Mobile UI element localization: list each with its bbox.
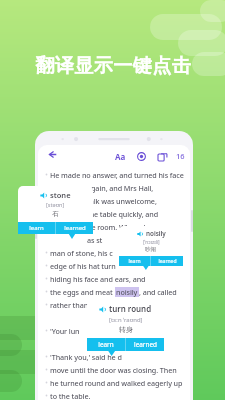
staticText: the eggs and meat: [50, 287, 115, 297]
button[interactable]: Font size: [113, 149, 127, 163]
staticText: learned: [64, 224, 86, 232]
staticText: 翻译显示一键点击: [35, 54, 191, 78]
staticText: [tɜːn ˈraʊnd]: [109, 316, 143, 324]
staticText: stone: [50, 190, 71, 200]
button[interactable]: learned: [126, 338, 164, 351]
staticText: talk was unwelcome,: [87, 196, 157, 206]
staticText: hiding his face and ears, and purposeful…: [50, 274, 185, 284]
button[interactable]: learn: [18, 222, 55, 234]
staticText: He made no answer, and turned his face: [50, 170, 184, 180]
staticText: [stəʊn]: [46, 201, 65, 209]
button[interactable]: learned: [56, 222, 93, 234]
staticText: he room. When she: [87, 222, 153, 232]
button[interactable]: learned: [151, 256, 183, 266]
staticText: [ˈnɔɪzɪli]: [143, 239, 160, 245]
staticText: 'Your lun: [50, 326, 80, 336]
staticText: 16: [176, 151, 185, 161]
staticText: turn round: [109, 304, 152, 315]
staticText: he turned round and walked eagerly up: [50, 378, 183, 388]
button[interactable]: Back: [43, 145, 61, 163]
button[interactable]: learn: [119, 256, 150, 266]
staticText: the table quickly, and: [87, 209, 159, 219]
staticText: 'Thank you,' said he d: [50, 352, 122, 362]
button[interactable]: Bookmark: [155, 149, 169, 163]
button[interactable]: learn: [87, 338, 125, 351]
staticText: Aa: [115, 151, 126, 162]
staticText: as st: [87, 235, 103, 245]
staticText: 转身: [119, 325, 133, 334]
staticText: learn: [29, 224, 44, 232]
staticText: learned: [134, 340, 157, 349]
staticText: rather than said to him:: [50, 300, 129, 310]
staticText: noisily: [146, 229, 166, 238]
staticText: to the table.: [50, 391, 91, 400]
staticText: learn: [98, 340, 114, 349]
staticText: 吵闹: [145, 246, 157, 253]
staticText: , and called: [139, 287, 177, 297]
staticText: noisily: [116, 287, 138, 297]
button[interactable]: Settings: [134, 149, 148, 163]
staticText: learned: [158, 258, 177, 265]
staticText: learn: [128, 258, 141, 265]
staticText: move until the door was closing. Then: [50, 365, 177, 375]
staticText: edge of his hat turn: [50, 261, 116, 271]
staticText: man of stone, his c: [50, 248, 113, 258]
staticText: 石: [52, 210, 59, 218]
staticText: again, and Mrs Hall,: [87, 183, 154, 193]
